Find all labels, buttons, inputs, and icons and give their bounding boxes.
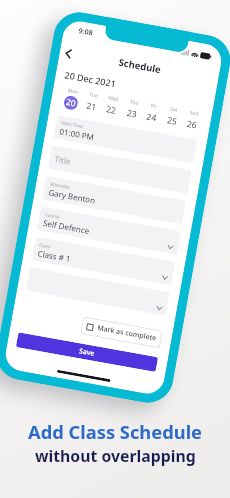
staticText: Attendee (50, 180, 70, 190)
staticText: Tue (89, 91, 99, 99)
staticText: 23 (126, 107, 138, 121)
staticText: Schedule (118, 56, 162, 76)
button[interactable]: Back (61, 45, 76, 61)
staticText: 26 (186, 118, 198, 131)
button[interactable]: Class (31, 237, 175, 285)
button[interactable]: Sun (184, 109, 201, 133)
button[interactable]: Mark as complete (80, 316, 163, 348)
staticText: Sat (170, 106, 179, 114)
staticText: Self Defence (42, 217, 90, 236)
staticText: 22 (105, 103, 117, 117)
button[interactable]: Save (16, 332, 158, 372)
button[interactable]: Attendee (42, 176, 186, 224)
button[interactable]: Start Time (53, 115, 197, 163)
staticText: Course (44, 211, 61, 220)
staticText: Sun (189, 109, 199, 118)
button[interactable]: Wed (103, 94, 121, 118)
staticText: Thu (129, 98, 139, 107)
staticText: Mark as complete (96, 323, 157, 344)
staticText: Title (54, 153, 71, 167)
staticText: Add Class Schedule (28, 419, 203, 444)
button[interactable]: Fri (143, 101, 161, 125)
staticText: Start Time (61, 119, 84, 129)
staticText: Fri (150, 102, 157, 110)
button[interactable]: Sat (164, 105, 182, 129)
staticText: Wed (108, 94, 120, 103)
staticText: 20 (65, 96, 77, 110)
staticText: Gary Benton (48, 186, 97, 206)
staticText: 01:00 PM (59, 125, 95, 142)
staticText: 9:08 (78, 26, 93, 38)
staticText: Save (78, 346, 96, 359)
staticText: 25 (166, 114, 178, 128)
button[interactable]: Course (37, 206, 181, 255)
staticText: 24 (146, 110, 158, 124)
button[interactable]: Mon (63, 87, 80, 111)
staticText: Class # 1 (37, 247, 72, 264)
staticText: Mon (67, 87, 79, 96)
button[interactable] (26, 267, 170, 316)
staticText: without overlapping (35, 445, 196, 467)
button[interactable]: Thu (124, 98, 141, 122)
staticText: Class (39, 241, 52, 249)
staticText: 20 Dec 2021 (64, 68, 117, 89)
staticText: 21 (86, 100, 98, 113)
button[interactable]: Tue (83, 90, 101, 115)
button[interactable]: Title (48, 145, 192, 194)
